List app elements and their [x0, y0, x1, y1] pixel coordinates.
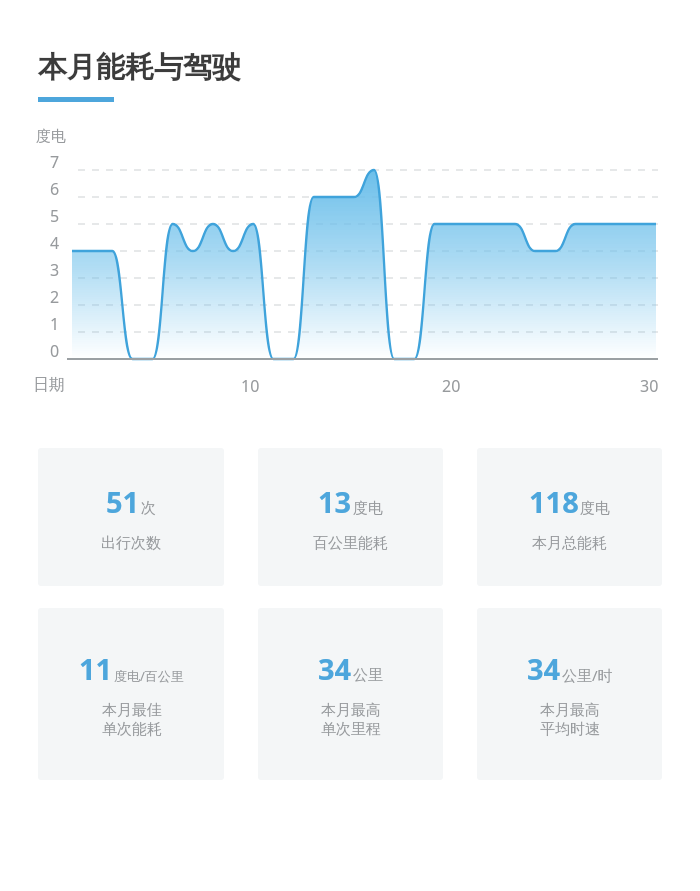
staticText: 34: [318, 649, 352, 688]
staticText: 4: [50, 232, 60, 254]
button[interactable]: 11: [38, 608, 224, 780]
button[interactable]: 13: [258, 448, 443, 586]
staticText: 本月最高: [321, 701, 381, 720]
staticText: 30: [640, 375, 659, 397]
staticText: 度电: [580, 499, 610, 518]
staticText: 本月最高: [540, 701, 600, 720]
staticText: 118: [529, 482, 579, 521]
staticText: 3: [50, 259, 60, 281]
staticText: 公里: [353, 666, 383, 685]
staticText: 本月总能耗: [532, 534, 607, 553]
staticText: 度电: [353, 499, 383, 518]
staticText: 度电: [36, 127, 66, 146]
staticText: 6: [50, 178, 60, 200]
staticText: 0: [50, 340, 60, 362]
staticText: 单次能耗: [102, 720, 162, 739]
staticText: 百公里能耗: [313, 534, 388, 553]
staticText: 公里/时: [562, 665, 613, 685]
staticText: 51: [106, 482, 140, 521]
staticText: 本月能耗与驾驶: [38, 49, 241, 86]
staticText: 2: [50, 286, 60, 308]
staticText: 出行次数: [101, 534, 161, 553]
staticText: 5: [50, 205, 60, 227]
staticText: 7: [50, 151, 60, 173]
staticText: 度电/百公里: [114, 667, 184, 685]
button[interactable]: 51: [38, 448, 224, 586]
staticText: 单次里程: [321, 720, 381, 739]
staticText: 20: [442, 375, 461, 397]
staticText: 10: [241, 375, 260, 397]
staticText: 13: [318, 482, 352, 521]
button[interactable]: 34: [258, 608, 443, 780]
button[interactable]: 118: [477, 448, 662, 586]
staticText: 日期: [33, 375, 65, 395]
staticText: 34: [527, 649, 561, 688]
staticText: 1: [50, 313, 60, 335]
staticText: 本月最佳: [102, 701, 162, 720]
button[interactable]: 34: [477, 608, 662, 780]
staticText: 次: [141, 499, 156, 518]
staticText: 11: [79, 649, 113, 688]
staticText: 平均时速: [540, 720, 600, 739]
